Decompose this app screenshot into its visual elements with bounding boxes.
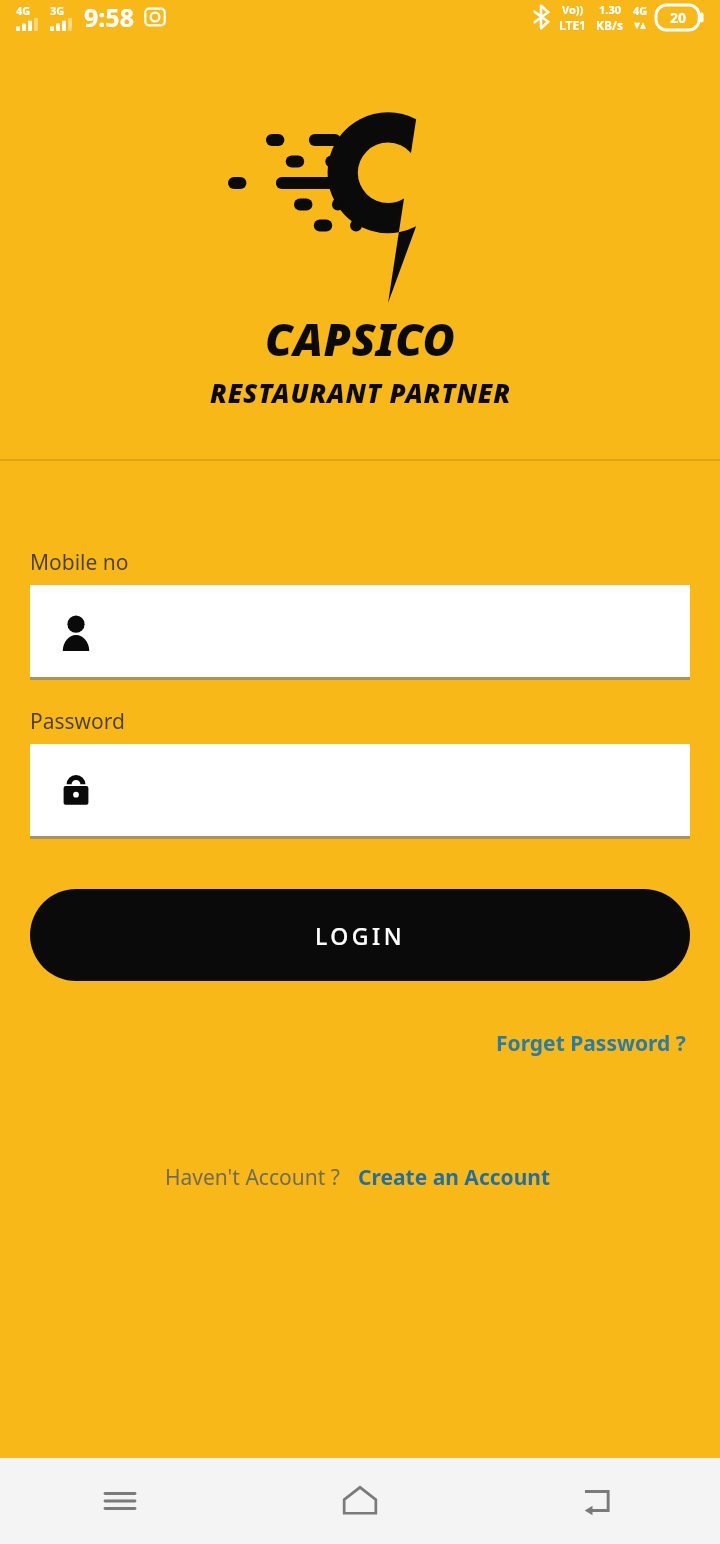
button[interactable]: Create an Account bbox=[354, 1159, 555, 1196]
staticText: Mobile no bbox=[30, 548, 129, 577]
button[interactable]: Back bbox=[480, 1458, 720, 1544]
staticText: KB/s bbox=[596, 17, 623, 33]
staticText: ▾▴ bbox=[634, 18, 647, 32]
staticText: Vo)) bbox=[562, 2, 584, 17]
staticText: 3G bbox=[50, 3, 65, 18]
staticText: LTE1 bbox=[559, 17, 586, 33]
staticText: LOGIN bbox=[315, 920, 406, 951]
staticText: 4G bbox=[16, 3, 31, 18]
staticText: RESTAURANT PARTNER bbox=[210, 375, 511, 410]
staticText: Password bbox=[30, 707, 125, 736]
staticText: Haven't Account ? bbox=[165, 1163, 340, 1192]
staticText: 4G bbox=[633, 3, 648, 18]
button[interactable]: Forget Password ? bbox=[492, 1025, 690, 1062]
button[interactable] bbox=[30, 585, 690, 677]
button[interactable]: LOGIN bbox=[30, 889, 690, 981]
staticText: CAPSICO bbox=[265, 309, 456, 369]
staticText: Forget Password ? bbox=[496, 1029, 686, 1058]
staticText: 9:58 bbox=[84, 0, 134, 34]
button[interactable]: Recent apps bbox=[0, 1458, 240, 1544]
staticText: 20 bbox=[670, 8, 687, 27]
button[interactable]: Home bbox=[240, 1458, 480, 1544]
staticText: 1.30 bbox=[599, 2, 621, 17]
staticText: Create an Account bbox=[358, 1163, 551, 1192]
button[interactable] bbox=[30, 744, 690, 836]
